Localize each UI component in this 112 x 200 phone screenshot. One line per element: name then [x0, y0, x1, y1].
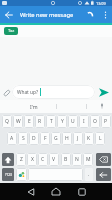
button[interactable]: [3, 10, 15, 20]
button[interactable]: ?123: [2, 168, 14, 181]
button[interactable]: D: [29, 132, 39, 145]
staticText: U: [71, 118, 75, 125]
button[interactable]: [72, 183, 92, 200]
staticText: Write new message: [20, 11, 74, 19]
button[interactable]: [2, 88, 11, 97]
button[interactable]: R: [35, 115, 45, 128]
staticText: S: [22, 135, 25, 142]
button[interactable]: [98, 87, 109, 97]
button[interactable]: .: [85, 168, 93, 181]
button[interactable]: E: [24, 115, 34, 128]
staticText: T: [50, 118, 53, 125]
button[interactable]: K: [84, 132, 94, 145]
staticText: F: [44, 135, 47, 142]
staticText: I'm: [30, 103, 38, 110]
button[interactable]: S: [18, 132, 28, 145]
button[interactable]: [46, 183, 66, 200]
button[interactable]: [85, 10, 95, 20]
staticText: ?123: [5, 173, 12, 177]
staticText: .: [88, 171, 90, 178]
staticText: Z: [20, 156, 23, 163]
button[interactable]: [2, 153, 14, 166]
staticText: I: [83, 118, 85, 125]
staticText: B: [64, 156, 68, 163]
button[interactable]: P: [101, 115, 111, 128]
staticText: O: [93, 118, 97, 125]
button[interactable]: O: [90, 115, 100, 128]
staticText: W: [16, 118, 21, 125]
staticText: What up?: [17, 89, 39, 96]
button[interactable]: Y: [57, 115, 67, 128]
staticText: 13:09: [96, 1, 106, 6]
staticText: R: [38, 118, 42, 125]
button[interactable]: A: [7, 132, 17, 145]
button[interactable]: I: [79, 115, 89, 128]
button[interactable]: C: [38, 153, 48, 166]
button[interactable]: J: [73, 132, 83, 145]
staticText: Q: [5, 118, 9, 125]
staticText: J: [77, 135, 79, 142]
button[interactable]: What up?: [12, 85, 95, 99]
staticText: N: [75, 156, 79, 163]
staticText: H: [65, 135, 69, 142]
staticText: E: [28, 118, 31, 125]
staticText: M: [86, 156, 91, 163]
button[interactable]: F: [40, 132, 50, 145]
button[interactable]: N: [72, 153, 82, 166]
staticText: L: [99, 135, 102, 142]
staticText: D: [32, 135, 36, 142]
button[interactable]: [96, 168, 111, 181]
staticText: Taz: [8, 28, 15, 34]
staticText: X: [31, 156, 34, 163]
button[interactable]: [96, 153, 111, 166]
button[interactable]: G: [51, 132, 61, 145]
staticText: V: [52, 156, 56, 163]
button[interactable]: X: [27, 153, 37, 166]
button[interactable]: [28, 168, 83, 181]
button[interactable]: W: [13, 115, 23, 128]
staticText: C: [41, 156, 45, 163]
staticText: G: [54, 135, 58, 142]
button[interactable]: U: [68, 115, 78, 128]
staticText: P: [104, 118, 108, 125]
button[interactable]: [16, 168, 27, 181]
staticText: A: [10, 135, 14, 142]
staticText: K: [87, 135, 91, 142]
button[interactable]: I'm: [16, 100, 52, 113]
button[interactable]: H: [62, 132, 72, 145]
button[interactable]: M: [83, 153, 93, 166]
button[interactable]: L: [95, 132, 105, 145]
button[interactable]: B: [61, 153, 71, 166]
button[interactable]: Taz: [4, 27, 18, 35]
staticText: Y: [61, 118, 64, 125]
button[interactable]: V: [49, 153, 59, 166]
button[interactable]: [100, 10, 110, 20]
button[interactable]: [21, 183, 41, 200]
button[interactable]: T: [46, 115, 56, 128]
button[interactable]: Q: [2, 115, 12, 128]
button[interactable]: Z: [16, 153, 26, 166]
